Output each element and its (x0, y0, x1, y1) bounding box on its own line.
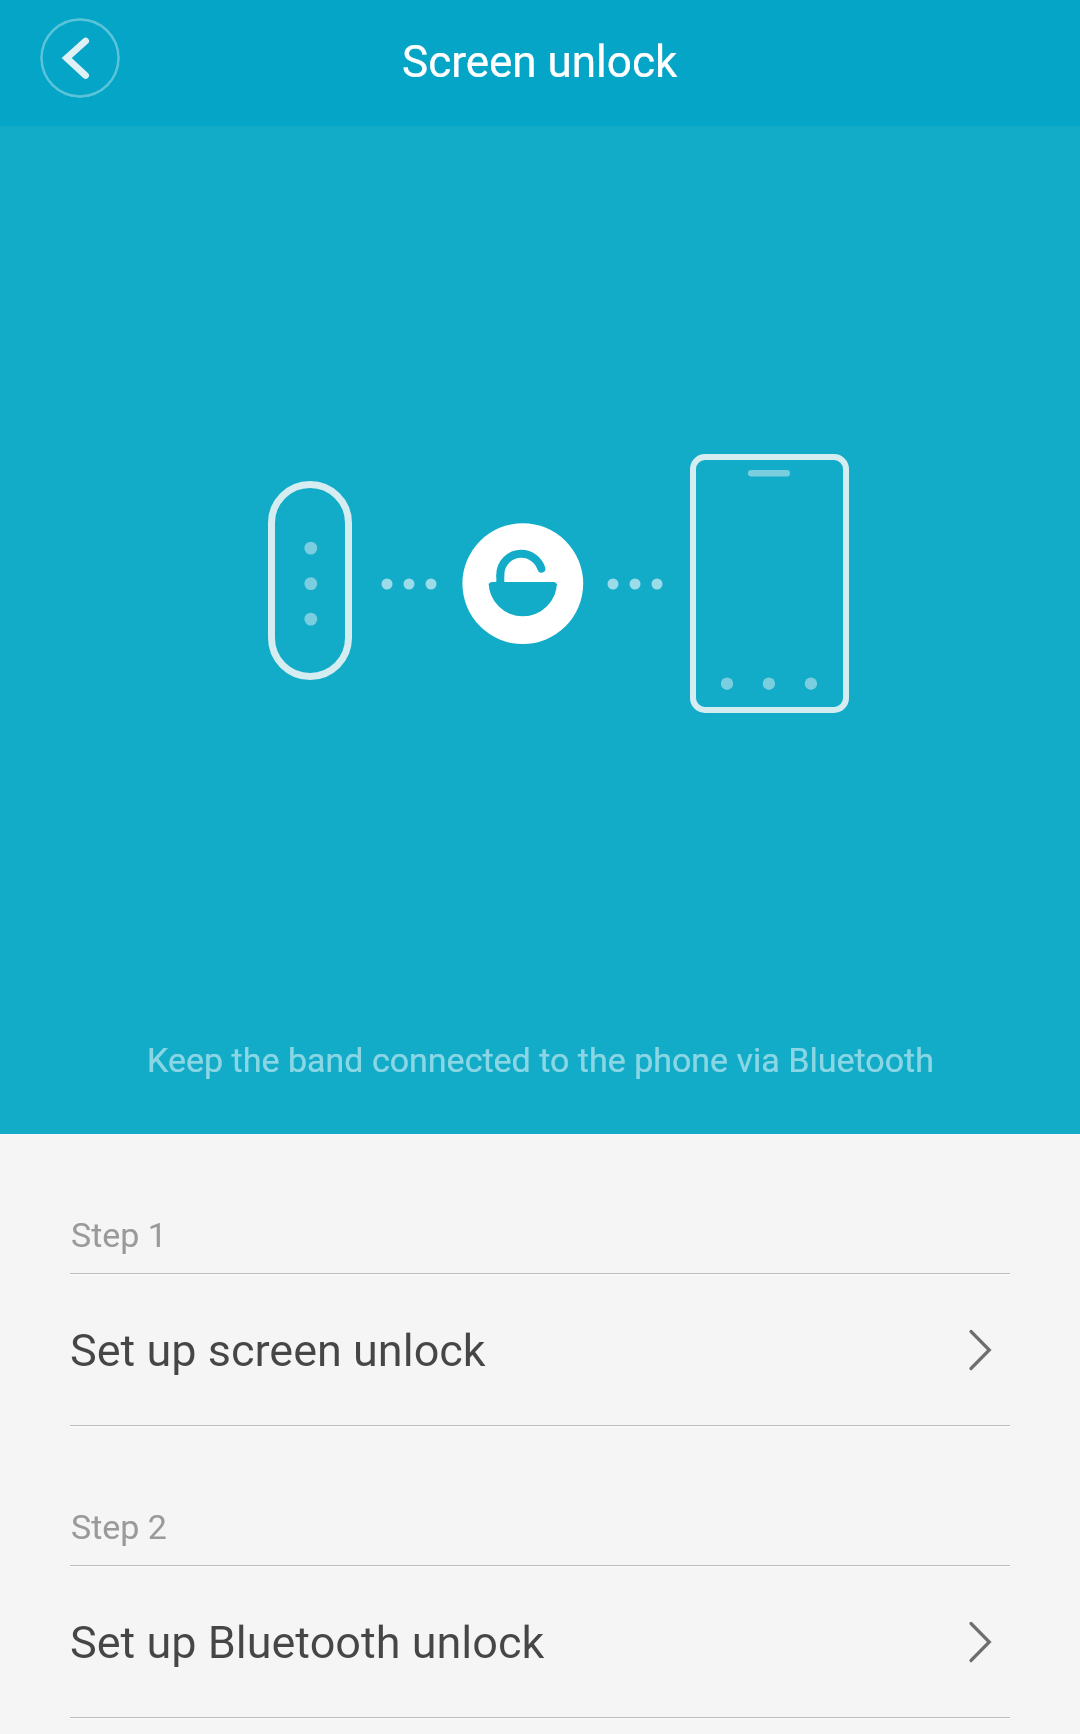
staticText: Keep the band connected to the phone via… (147, 1040, 934, 1080)
button[interactable]: Set up Bluetooth unlock (0, 1567, 1080, 1717)
staticText: Step 2 (71, 1507, 167, 1547)
staticText: Set up screen unlock (70, 1324, 486, 1377)
button[interactable]: Back (40, 18, 120, 98)
staticText: Screen unlock (402, 36, 678, 88)
staticText: Set up Bluetooth unlock (70, 1616, 545, 1669)
button[interactable]: Set up screen unlock (0, 1275, 1080, 1425)
staticText: Step 1 (71, 1215, 167, 1255)
